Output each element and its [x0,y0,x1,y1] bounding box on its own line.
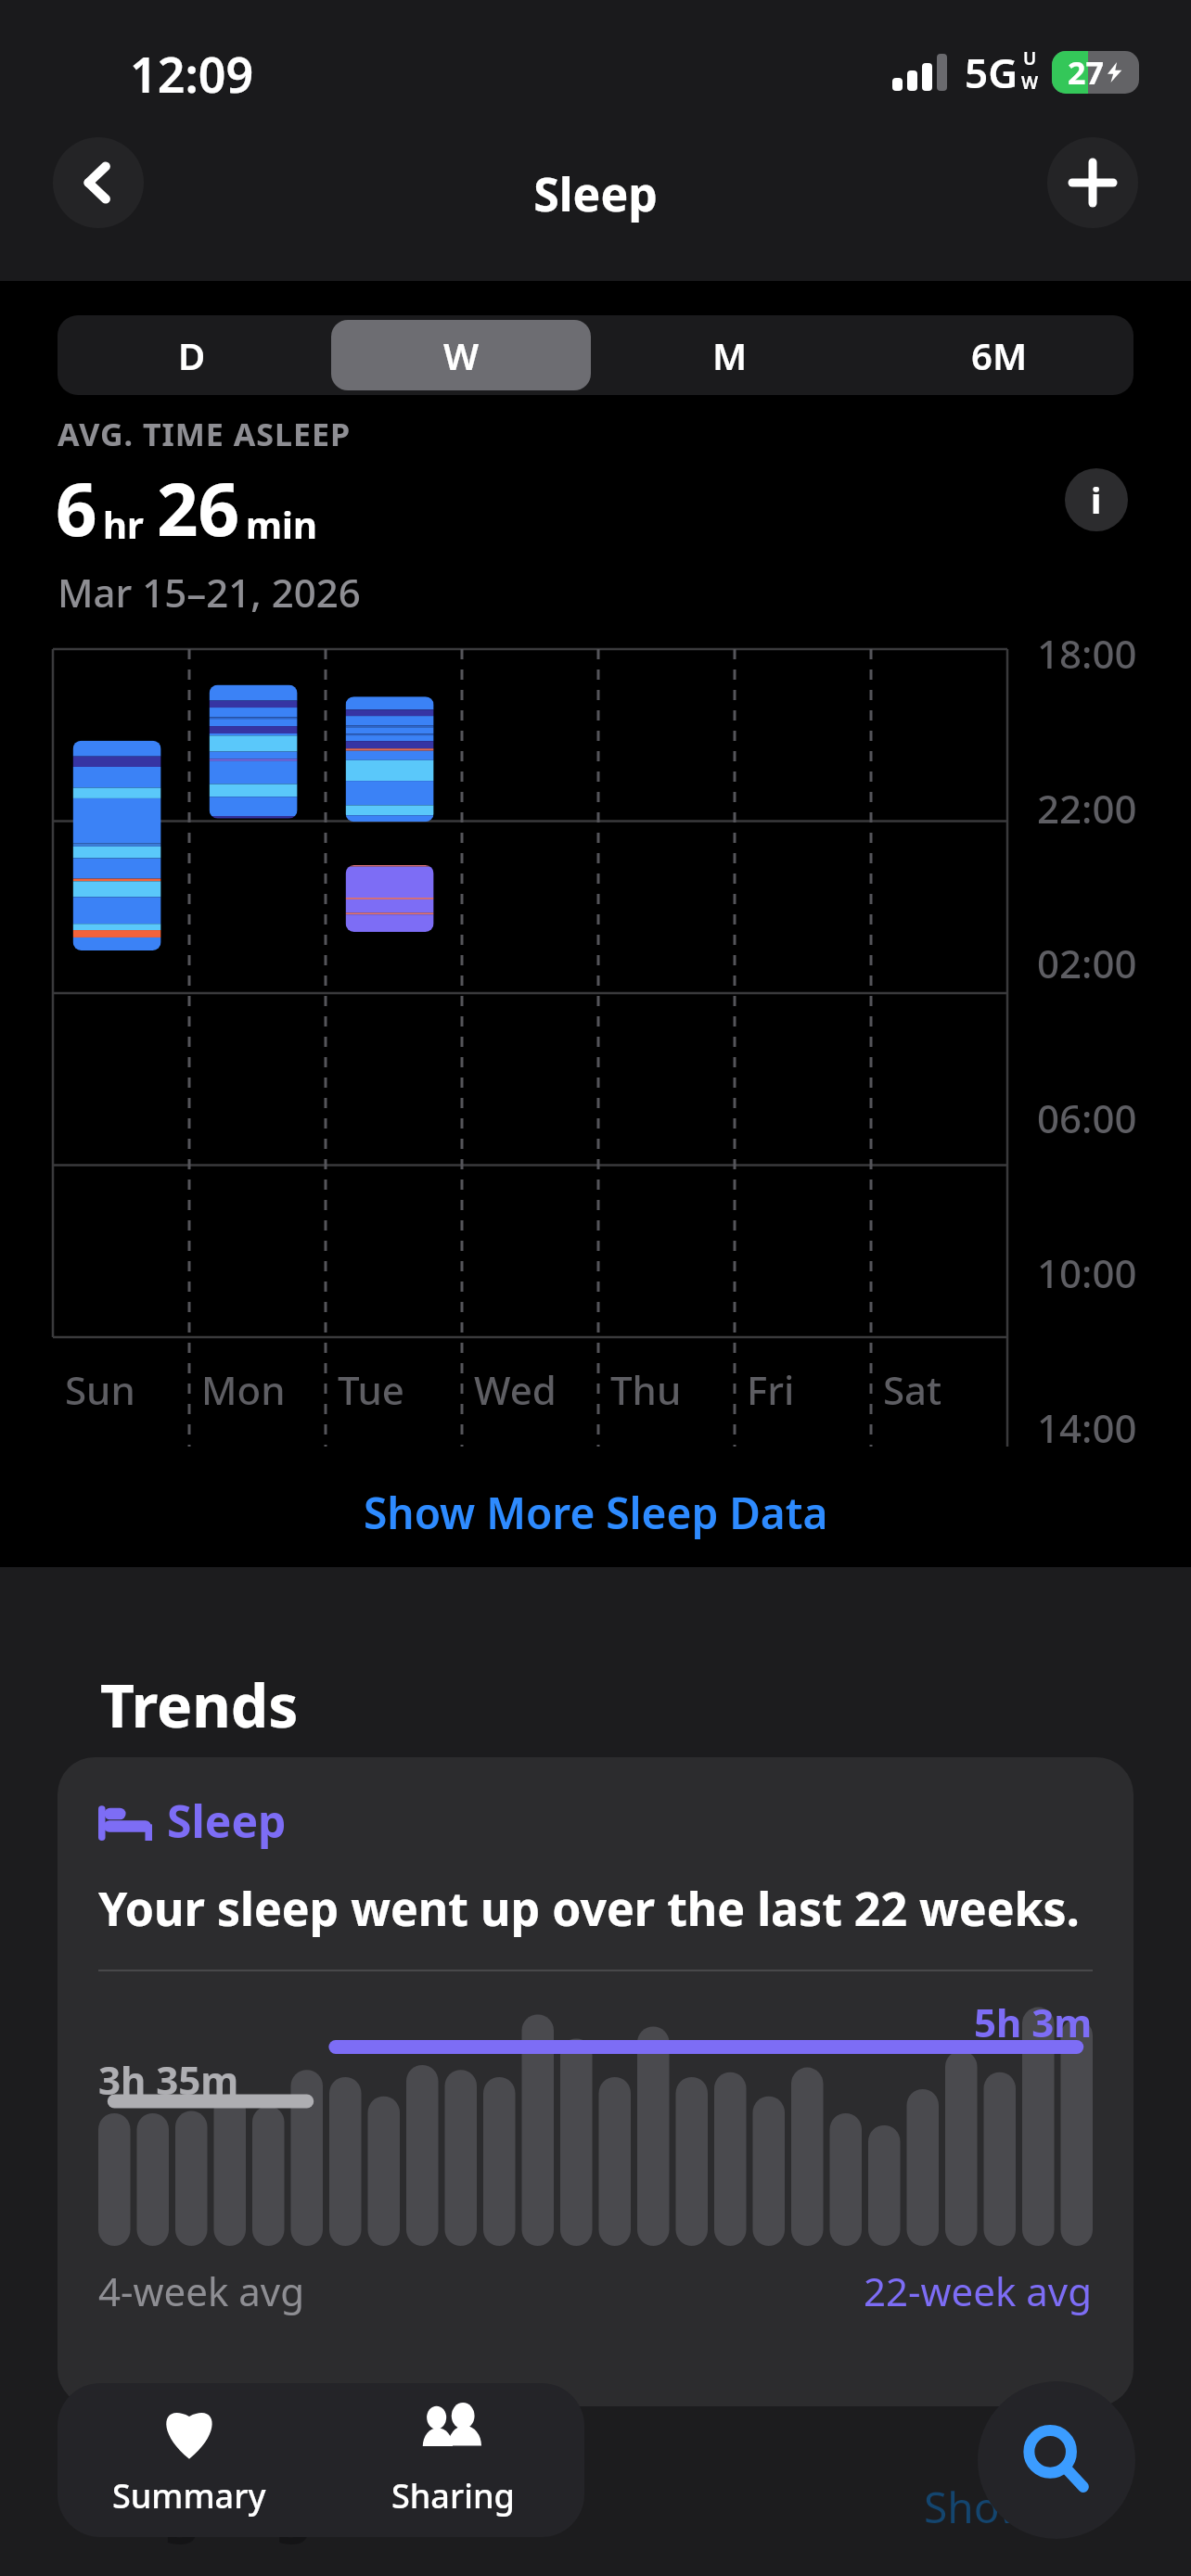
staticText: Wed [474,1363,557,1416]
button[interactable]: Info [1065,468,1128,531]
button[interactable]: Show All [924,2478,1093,2536]
staticText: Sat [883,1363,942,1416]
staticText: 22-week avg [864,2264,1093,2317]
staticText: AVG. TIME ASLEEP [58,413,352,455]
staticText: Sharing [391,2473,515,2519]
staticText: Highlights [100,2467,924,2547]
staticText: 27 [1068,51,1104,94]
button[interactable]: Search [978,2381,1135,2539]
staticText: Sleep [0,162,1191,225]
button[interactable]: W [331,320,591,390]
staticText: 06:00 [1037,1091,1137,1144]
staticText: 6 [56,459,97,557]
button[interactable]: Summary [58,2383,321,2537]
staticText: W [1021,70,1039,95]
staticText: 12:09 [130,41,254,107]
staticText: 26 [157,459,240,557]
staticText: Tue [338,1363,404,1416]
staticText: 3h 35m [98,2053,239,2106]
staticText: Summary [112,2473,266,2519]
staticText: Trends [100,1664,299,1745]
button[interactable]: D [62,320,322,390]
staticText: 02:00 [1037,937,1137,989]
staticText: Mon [201,1363,286,1416]
staticText: U [1023,46,1037,70]
staticText: M [712,330,748,380]
staticText: 4-week avg [98,2264,864,2317]
staticText: Mar 15–21, 2026 [58,566,361,618]
button[interactable]: Add [1047,137,1138,228]
staticText: D [178,330,206,380]
staticText: 5h 3m [974,1996,1093,2048]
staticText: Fri [747,1363,795,1416]
staticText: 22:00 [1037,782,1137,835]
button[interactable]: M [600,320,860,390]
staticText: W [443,330,480,380]
staticText: hr [103,499,144,549]
staticText: Sleep [167,1791,287,1851]
button[interactable]: Sharing [321,2383,584,2537]
staticText: Your sleep went up over the last 22 week… [98,1877,1080,1940]
button[interactable]: Back [53,137,144,228]
staticText: Thu [610,1363,682,1416]
staticText: 6M [971,330,1028,380]
button[interactable]: Sleep [58,1757,1133,2406]
staticText: 14:00 [1037,1401,1137,1454]
staticText: min [246,499,317,549]
staticText: 10:00 [1037,1246,1137,1299]
button[interactable]: 6M [869,320,1129,390]
staticText: Show More Sleep Data [364,1484,828,1542]
button[interactable]: Show More Sleep Data [0,1484,1191,1542]
staticText: Sun [65,1363,135,1416]
staticText: 18:00 [1037,627,1137,680]
staticText: i [1091,476,1102,524]
staticText: 5G [965,45,1018,100]
